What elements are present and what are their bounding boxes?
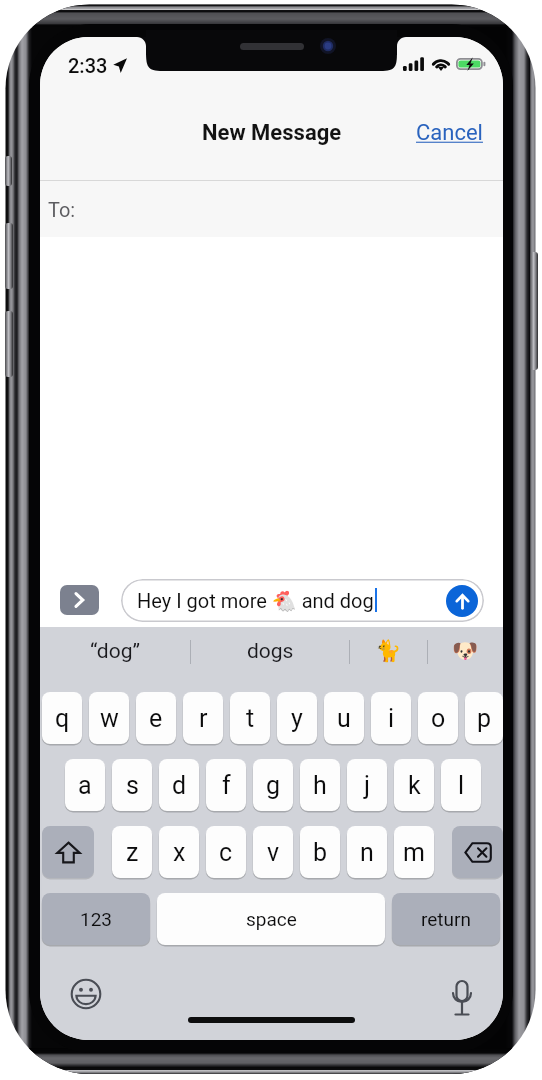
staticText: h: [313, 771, 327, 800]
button[interactable]: r: [183, 692, 223, 744]
staticText: u: [337, 704, 351, 733]
staticText: a: [78, 771, 92, 800]
button[interactable]: Hey I got more 🐔 and dog: [121, 579, 484, 622]
button[interactable]: “dog”: [40, 627, 190, 676]
button[interactable]: Send: [446, 585, 478, 617]
button[interactable]: a: [65, 759, 105, 811]
staticText: 🐈: [375, 639, 402, 664]
button[interactable]: 🐶: [428, 627, 503, 676]
staticText: i: [388, 704, 395, 733]
button[interactable]: 123: [42, 893, 150, 945]
button[interactable]: q: [42, 692, 82, 744]
staticText: Hey I got more 🐔 and dog: [137, 589, 374, 612]
staticText: To:: [48, 198, 76, 221]
button[interactable]: p: [465, 692, 503, 744]
staticText: k: [408, 771, 421, 800]
button[interactable]: Show apps: [60, 585, 99, 615]
staticText: return: [421, 908, 471, 930]
staticText: j: [364, 771, 370, 800]
staticText: dogs: [247, 639, 294, 664]
button[interactable]: dogs: [191, 627, 349, 676]
button[interactable]: h: [300, 759, 340, 811]
button[interactable]: d: [159, 759, 199, 811]
staticText: v: [267, 838, 280, 867]
button[interactable]: w: [89, 692, 129, 744]
button[interactable]: s: [112, 759, 152, 811]
button[interactable]: t: [230, 692, 270, 744]
staticText: 2:33: [68, 54, 108, 77]
staticText: c: [219, 838, 233, 867]
button[interactable]: j: [347, 759, 387, 811]
staticText: n: [360, 838, 374, 867]
button[interactable]: v: [253, 826, 293, 878]
button[interactable]: x: [159, 826, 199, 878]
staticText: q: [55, 704, 70, 733]
staticText: g: [266, 771, 281, 800]
staticText: b: [313, 838, 328, 867]
button[interactable]: b: [300, 826, 340, 878]
button[interactable]: Emoji keyboard: [70, 978, 102, 1010]
staticText: m: [403, 838, 425, 867]
staticText: “dog”: [90, 639, 140, 664]
staticText: s: [126, 771, 139, 800]
staticText: z: [126, 838, 139, 867]
button[interactable]: y: [277, 692, 317, 744]
button[interactable]: z: [112, 826, 152, 878]
staticText: y: [291, 704, 303, 733]
staticText: w: [100, 704, 119, 733]
button[interactable]: Dictate: [451, 981, 473, 1019]
button[interactable]: return: [392, 893, 500, 945]
button[interactable]: k: [394, 759, 434, 811]
button[interactable]: n: [347, 826, 387, 878]
button[interactable]: f: [206, 759, 246, 811]
button[interactable]: e: [136, 692, 176, 744]
staticText: o: [431, 704, 446, 733]
staticText: e: [149, 704, 163, 733]
staticText: f: [222, 771, 231, 800]
button[interactable]: Backspace: [452, 826, 503, 878]
button[interactable]: 🐈: [350, 627, 427, 676]
staticText: 123: [80, 908, 113, 930]
button[interactable]: Cancel: [412, 116, 487, 150]
staticText: New Message: [202, 120, 342, 146]
button[interactable]: space: [157, 893, 385, 945]
staticText: d: [172, 771, 187, 800]
staticText: x: [173, 838, 186, 867]
button[interactable]: l: [441, 759, 481, 811]
button[interactable]: c: [206, 826, 246, 878]
button[interactable]: Shift: [42, 826, 94, 878]
button[interactable]: u: [324, 692, 364, 744]
button[interactable]: m: [394, 826, 434, 878]
staticText: t: [246, 704, 255, 733]
button[interactable]: o: [418, 692, 458, 744]
staticText: space: [246, 908, 297, 930]
staticText: r: [199, 704, 208, 733]
staticText: l: [458, 771, 465, 800]
button[interactable]: i: [371, 692, 411, 744]
staticText: Cancel: [416, 120, 483, 146]
staticText: p: [477, 704, 492, 733]
button[interactable]: g: [253, 759, 293, 811]
staticText: 🐶: [452, 639, 479, 664]
